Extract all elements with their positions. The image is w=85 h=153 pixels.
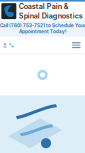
button[interactable]: Coastal Pain and Spinal Diagnostics home: [1, 3, 16, 19]
button[interactable]: Menu: [72, 42, 80, 48]
staticText: Appointment Today!: [19, 29, 67, 34]
button[interactable]: Call us: [9, 43, 14, 48]
staticText: Spinal Diagnostics: [19, 11, 83, 20]
button[interactable]: Find us: [3, 43, 7, 48]
button[interactable]: Call (760) 753-7521 to Schedule Your: [0, 21, 85, 37]
staticText: Call (760) 753-7521 to Schedule Your: [0, 23, 85, 28]
staticText: Coastal Pain &: [19, 2, 69, 11]
